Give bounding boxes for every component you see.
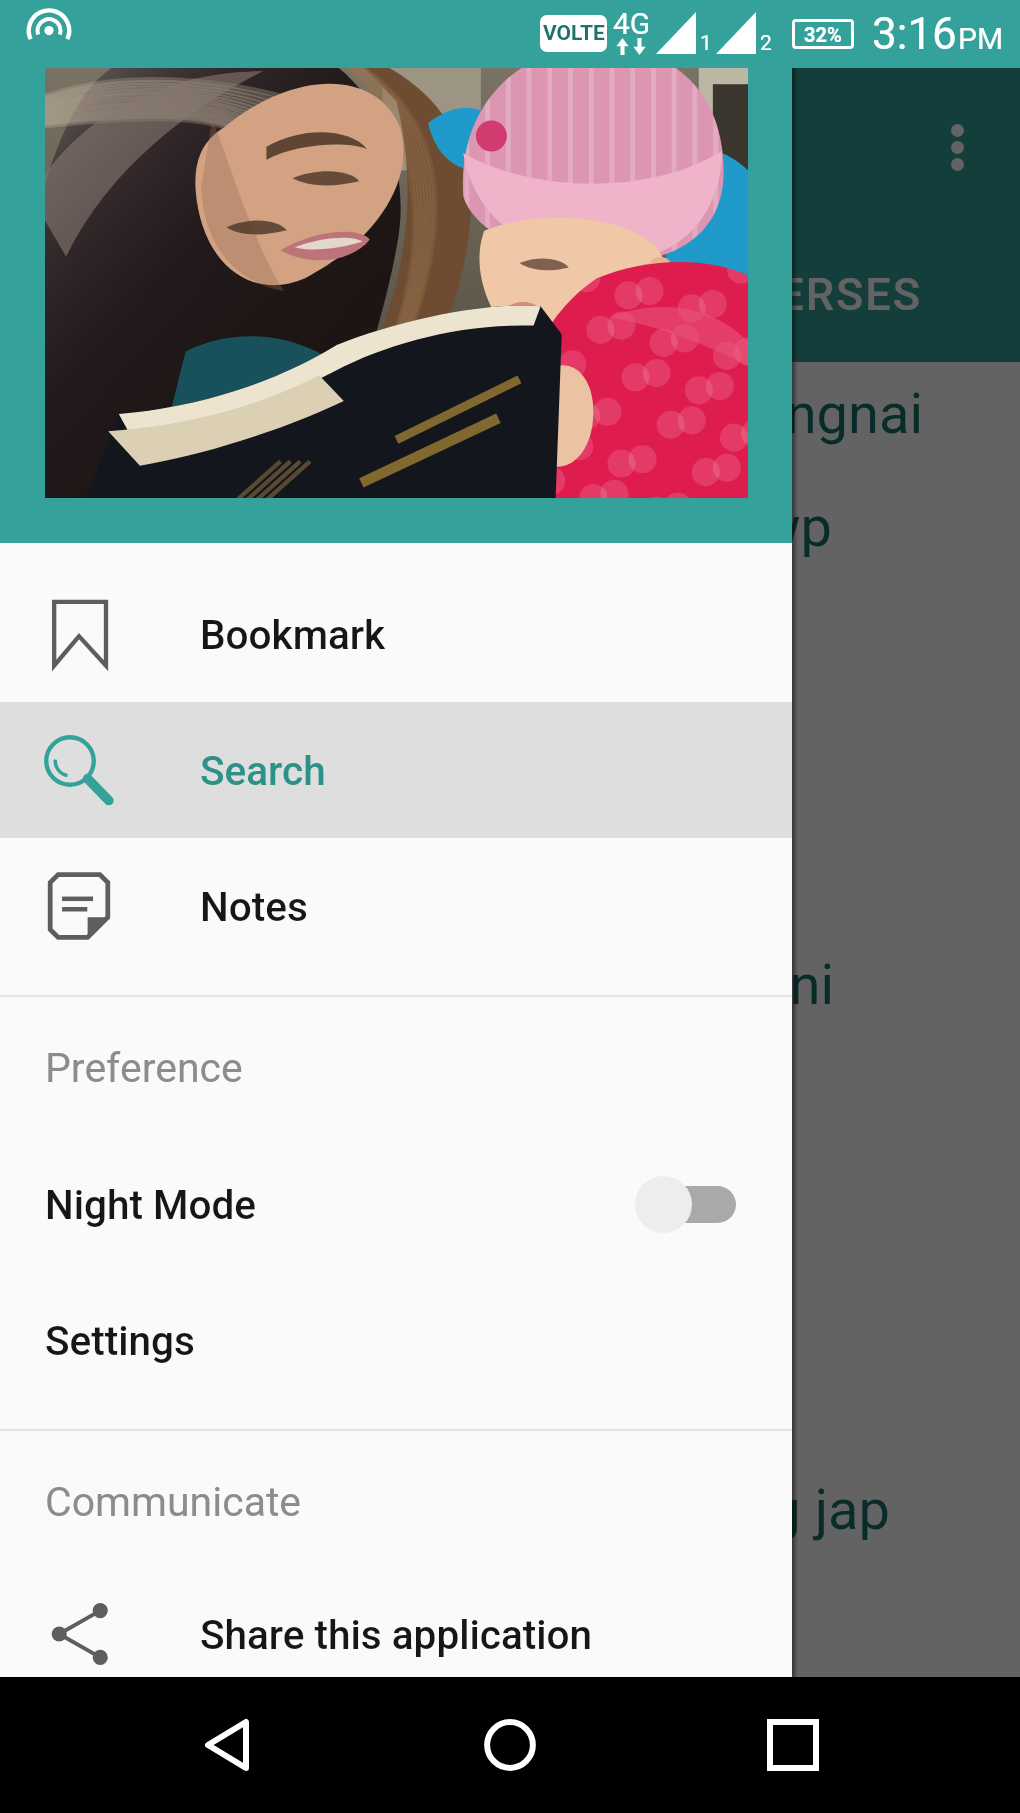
button[interactable]: Night Mode switch	[635, 1175, 736, 1233]
button[interactable]: BOOKS	[0, 268, 244, 321]
button[interactable]: Search	[0, 702, 792, 838]
button[interactable]: More options	[927, 117, 987, 177]
button[interactable]: Bookmark	[0, 566, 792, 702]
staticText: Search	[200, 747, 326, 794]
button[interactable]: Notes	[0, 838, 792, 974]
button[interactable]: VERSES	[0, 268, 922, 321]
staticText: Communicate	[45, 1478, 302, 1526]
button[interactable]: Home	[455, 1690, 565, 1800]
staticText: tan dinhmun chiang taka chiang jap	[0, 1477, 890, 1543]
button[interactable]: Back	[173, 1690, 283, 1800]
staticText: hriselna leh chatuan dam zia hi ni	[0, 952, 834, 1018]
button[interactable]: Settings	[0, 1272, 792, 1408]
staticText: Settings	[45, 1317, 195, 1364]
staticText: Bookmark	[200, 611, 386, 658]
staticText: 1	[700, 31, 712, 56]
staticText: Share this application	[200, 1611, 593, 1658]
staticText: VOLTE	[543, 21, 605, 46]
staticText: a ni a, Lalrochhungnai	[0, 381, 923, 447]
button[interactable]: CHAPTERS	[0, 268, 583, 321]
button[interactable]: Night Mode	[0, 1136, 792, 1272]
staticText: 32%	[804, 23, 842, 46]
staticText: 3:16	[872, 8, 957, 60]
staticText: BOOKS	[0, 268, 244, 321]
staticText: CHAPTERS	[0, 268, 583, 321]
staticText: 2	[760, 31, 772, 56]
staticText: ka awm reng ang tih ka hria lawp	[0, 494, 832, 560]
button[interactable]: Recents	[738, 1690, 848, 1800]
staticText: Night Mode	[45, 1181, 256, 1228]
button[interactable]: Share this application	[0, 1566, 792, 1702]
staticText: VERSES	[0, 268, 922, 321]
staticText: Preference	[45, 1044, 243, 1092]
staticText: PM	[958, 21, 1004, 56]
staticText: 4G	[613, 6, 651, 41]
staticText: Notes	[200, 883, 308, 930]
